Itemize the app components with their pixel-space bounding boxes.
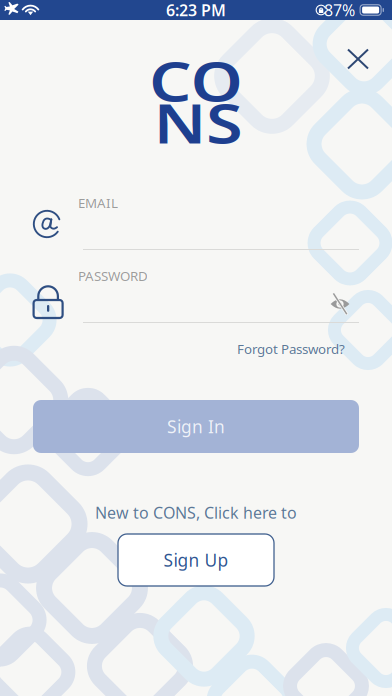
- staticText: 87%: [324, 0, 355, 21]
- staticText: 6:23 PM: [166, 0, 226, 21]
- staticText: Sign In: [167, 415, 225, 438]
- staticText: NS: [161, 86, 234, 159]
- button[interactable]: Close: [336, 37, 380, 81]
- button[interactable]: Forgot Password?: [235, 337, 347, 361]
- staticText: PASSWORD: [78, 267, 148, 285]
- staticText: CO: [157, 44, 234, 117]
- staticText: Sign Up: [163, 548, 228, 571]
- button[interactable]: Show password: [322, 288, 358, 320]
- staticText: EMAIL: [78, 194, 118, 212]
- button[interactable]: Sign In: [33, 400, 359, 453]
- staticText: New to CONS, Click here to: [95, 502, 297, 523]
- staticText: Forgot Password?: [237, 340, 345, 358]
- button[interactable]: Sign Up: [118, 534, 274, 586]
